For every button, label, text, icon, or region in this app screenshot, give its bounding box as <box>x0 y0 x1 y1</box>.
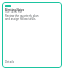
button[interactable]: Category <box>5 5 11 7</box>
button[interactable]: Details <box>5 60 14 64</box>
staticText: Review the quarterly plan and assign fol… <box>5 14 39 21</box>
button[interactable]: Category <box>2 2 62 68</box>
staticText: Meeting Notes <box>5 8 25 12</box>
staticText: Tue 14:30 PM <box>5 10 22 14</box>
